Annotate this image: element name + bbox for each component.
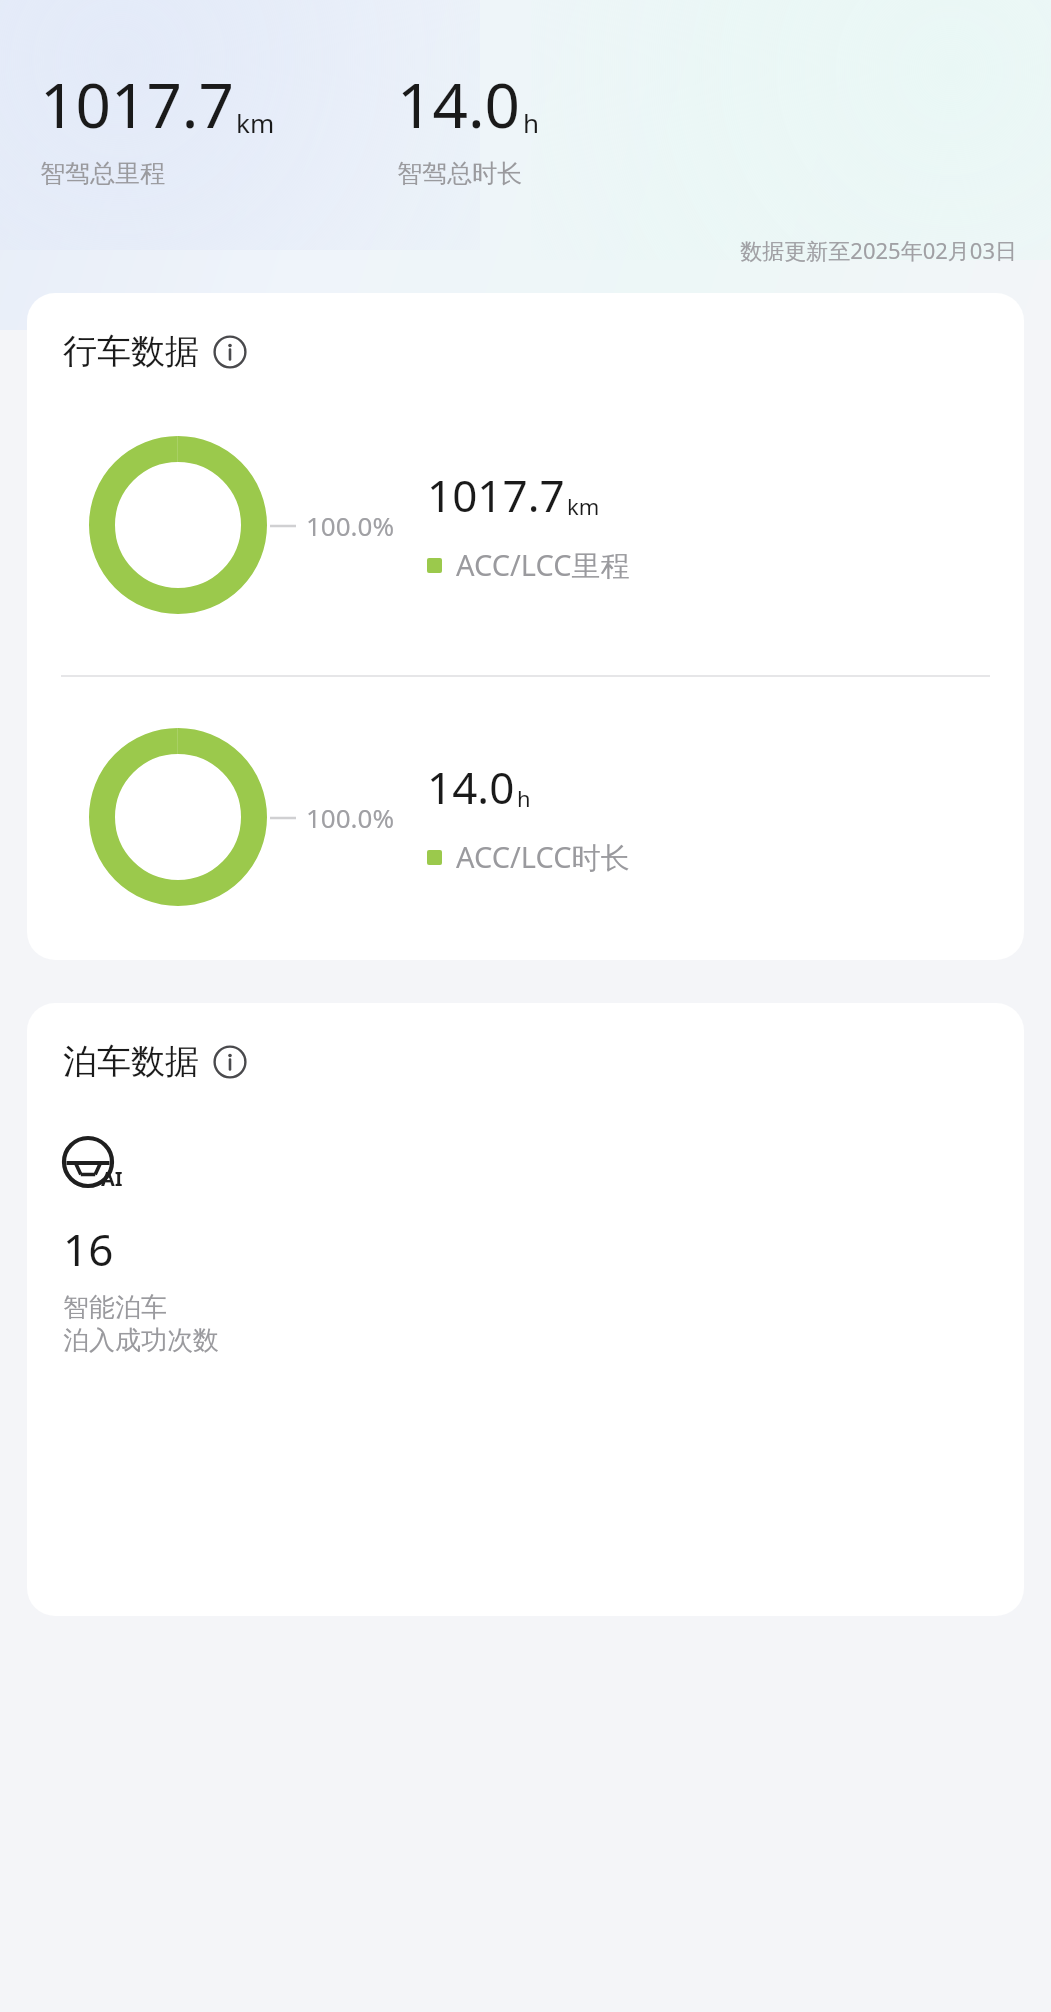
staticText: AI [101,1165,123,1192]
staticText: 1017.7 [427,465,565,525]
staticText: 100.0% [306,800,395,835]
button[interactable]: Information [213,335,247,369]
staticText: ACC/LCC时长 [456,837,630,877]
staticText: 泊车数据 [63,1040,199,1083]
staticText: 智驾总时长 [397,158,522,189]
staticText: 行车数据 [63,330,199,373]
staticText: km [236,105,275,140]
staticText: 智驾总里程 [40,158,165,189]
staticText: 14.0 [397,62,521,146]
staticText: ACC/LCC里程 [456,545,630,585]
staticText: 1017.7 [40,62,234,146]
other: Smart parking [63,1135,129,1193]
staticText: 智能泊车 [63,1291,167,1324]
staticText: km [567,491,600,521]
staticText: 泊入成功次数 [63,1324,219,1357]
staticText: 16 [63,1219,114,1279]
staticText: 14.0 [427,757,515,817]
button[interactable]: 泊车数据 [63,1040,247,1083]
staticText: h [517,783,531,813]
staticText: 100.0% [306,508,395,543]
button[interactable]: 行车数据 [63,330,247,373]
staticText: 数据更新至2025年02月03日 [740,235,1017,265]
staticText: h [523,105,540,140]
button[interactable]: Information [213,1045,247,1079]
